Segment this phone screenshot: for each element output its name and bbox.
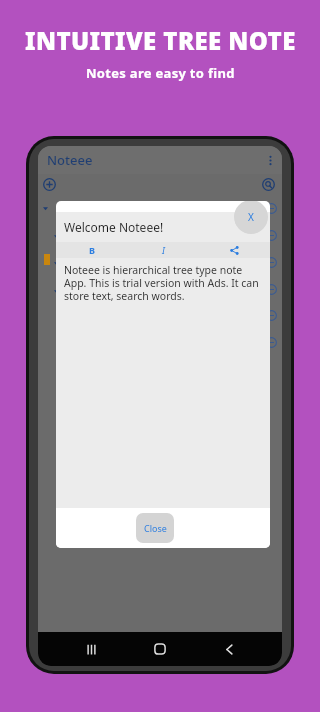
button[interactable] [51,258,61,268]
button[interactable]: Collapse node [264,228,279,243]
staticText: INTUITIVE TREE NOTE [25,24,296,57]
staticText: Notes are easy to find [86,64,235,82]
button[interactable] [51,286,61,296]
button[interactable]: Add note [40,175,59,194]
staticText: X [248,210,254,224]
button[interactable]: Close [136,513,174,543]
button[interactable]: Collapse node [264,282,279,297]
button[interactable]: Collapse node [264,201,279,216]
button[interactable] [51,231,61,241]
staticText: Close [144,522,167,534]
button[interactable]: Collapse node [264,308,279,323]
button[interactable]: B [56,242,128,258]
button[interactable]: I [128,242,199,258]
button[interactable]: More options [258,148,282,172]
staticText: B [89,244,95,256]
button[interactable]: Recents [75,633,107,665]
staticText: Welcome Noteee! [64,219,164,235]
staticText: I [162,244,165,256]
button[interactable]: Noteee [38,146,282,174]
staticText: Noteee [47,151,93,169]
button[interactable]: Welcome Noteee! [56,212,270,242]
button[interactable]: Search [259,175,278,194]
button[interactable] [40,203,50,213]
button[interactable]: Collapse node [264,335,279,350]
button[interactable]: Home [144,633,176,665]
button[interactable]: Noteee is hierarchical tree type note Ap… [56,258,270,508]
button[interactable]: Collapse node [264,255,279,270]
button[interactable]: Back [213,633,245,665]
button[interactable]: Close dialog [234,201,268,234]
staticText: Noteee is hierarchical tree type note Ap… [64,263,264,303]
button[interactable]: Share [199,242,270,258]
